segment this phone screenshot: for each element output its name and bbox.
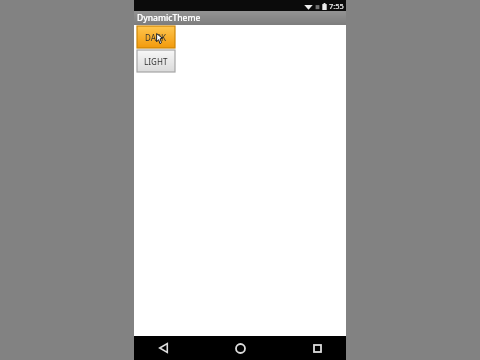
button[interactable]: DynamicTheme	[134, 11, 346, 25]
staticText: LIGHT	[144, 56, 168, 67]
staticText: DARK	[145, 32, 167, 43]
button[interactable]: Recent apps	[302, 336, 332, 360]
button[interactable]: Back	[148, 336, 178, 360]
button[interactable]: Home	[225, 336, 255, 360]
staticText: DynamicTheme	[137, 12, 201, 24]
staticText: 7:55	[329, 1, 344, 11]
button[interactable]: DARK	[137, 26, 175, 48]
button[interactable]: LIGHT	[137, 50, 175, 72]
